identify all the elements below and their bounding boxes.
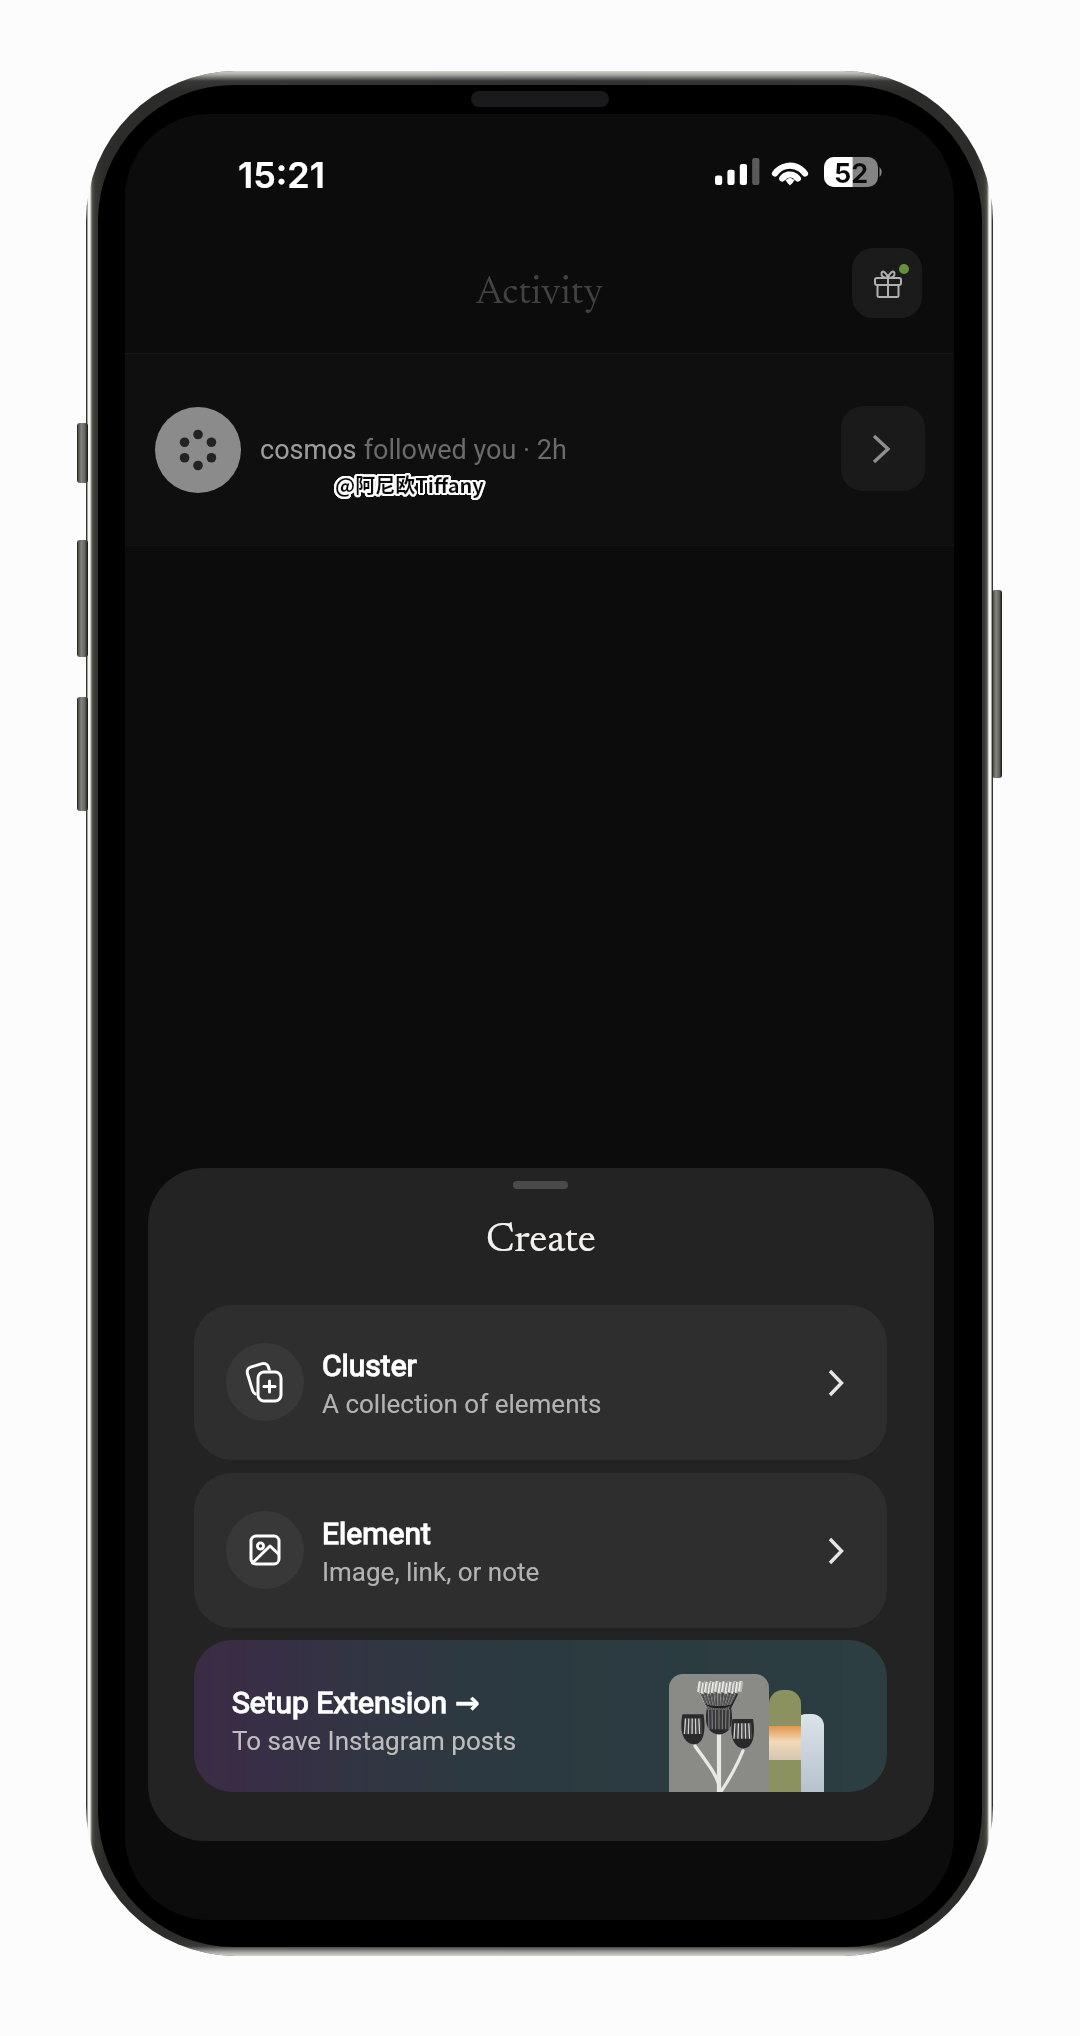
staticText: Image, link, or note (322, 1557, 540, 1587)
staticText: @阿尼欧Tiffany (335, 470, 484, 499)
button[interactable]: Setup Extension → (194, 1640, 887, 1792)
staticText: cosmos (260, 434, 357, 466)
staticText: @阿尼欧Tiffany (337, 470, 486, 499)
staticText: @阿尼欧Tiffany (335, 469, 484, 498)
staticText: Create (486, 1221, 596, 1262)
staticText: A collection of elements (322, 1389, 602, 1419)
staticText: @阿尼欧Tiffany (333, 471, 482, 500)
button[interactable] (125, 354, 954, 545)
staticText: @阿尼欧Tiffany (336, 470, 485, 499)
staticText: @阿尼欧Tiffany (334, 469, 483, 498)
button[interactable]: Element (194, 1473, 887, 1628)
staticText: @阿尼欧Tiffany (336, 468, 485, 497)
staticText: @阿尼欧Tiffany (336, 469, 485, 498)
button[interactable]: Cluster (194, 1305, 887, 1460)
staticText: Element (322, 1516, 431, 1551)
staticText: 15:21 (238, 153, 325, 197)
staticText: followed you · 2h (357, 434, 567, 466)
staticText: @阿尼欧Tiffany (335, 472, 484, 501)
staticText: Setup Extension → (232, 1685, 480, 1720)
staticText: @阿尼欧Tiffany (334, 468, 483, 497)
staticText: To save Instagram posts (232, 1726, 517, 1756)
button[interactable]: Gifts (852, 248, 922, 318)
staticText: @阿尼欧Tiffany (334, 470, 483, 499)
staticText: @阿尼欧Tiffany (334, 472, 483, 501)
staticText: @阿尼欧Tiffany (337, 469, 486, 498)
staticText: @阿尼欧Tiffany (335, 468, 484, 497)
staticText: @阿尼欧Tiffany (333, 470, 482, 499)
staticText: @阿尼欧Tiffany (337, 471, 486, 500)
staticText: Cluster (322, 1348, 417, 1383)
staticText: @阿尼欧Tiffany (333, 469, 482, 498)
staticText: @阿尼欧Tiffany (334, 471, 483, 500)
button[interactable]: Open (841, 406, 925, 491)
staticText: Activity (476, 274, 603, 313)
staticText: 52 (834, 157, 869, 190)
staticText: @阿尼欧Tiffany (336, 471, 485, 500)
staticText: @阿尼欧Tiffany (336, 472, 485, 501)
staticText: @阿尼欧Tiffany (335, 471, 484, 500)
